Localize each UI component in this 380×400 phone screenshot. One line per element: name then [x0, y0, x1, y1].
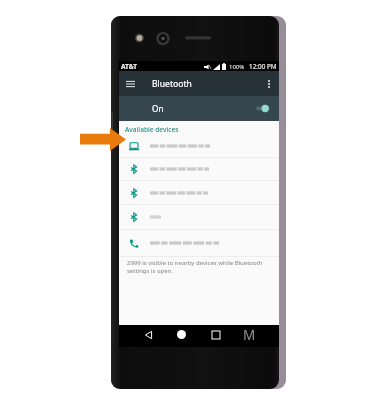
button[interactable]: Home [174, 327, 189, 342]
staticText: AT&T [121, 62, 138, 71]
button[interactable] [119, 158, 279, 181]
button[interactable]: Recent apps [208, 327, 223, 342]
staticText: Available devices [125, 125, 179, 134]
button[interactable] [119, 205, 279, 230]
staticText: Bluetooth [152, 78, 192, 90]
button[interactable]: Back [141, 327, 156, 342]
staticText: M [243, 326, 256, 341]
button[interactable]: Navigation menu [123, 77, 137, 91]
staticText: On [152, 103, 164, 114]
staticText: Z999 is visible to nearby devices while … [127, 259, 265, 275]
button[interactable]: On [119, 96, 279, 121]
staticText: 100% [229, 63, 245, 71]
staticText: 12:00 PM [249, 62, 277, 71]
button[interactable] [119, 230, 279, 257]
button[interactable] [119, 134, 279, 158]
button[interactable]: Menu [242, 326, 257, 341]
button[interactable]: More options [262, 77, 275, 90]
button[interactable] [119, 181, 279, 205]
